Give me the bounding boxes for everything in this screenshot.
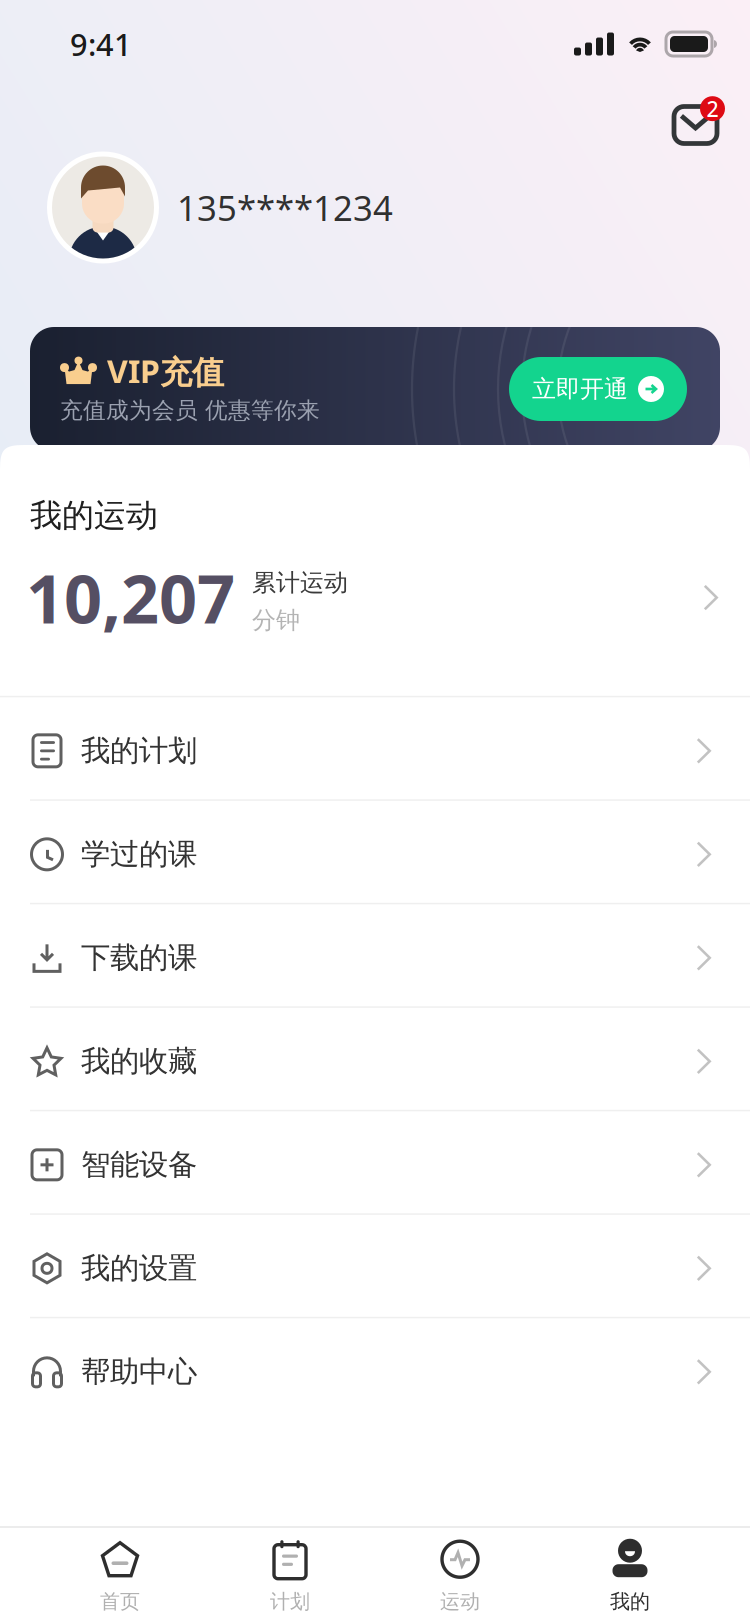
staticText: 运动 [440,1589,480,1614]
staticText: 充值成为会员 优惠等你来 [60,396,320,424]
button[interactable]: 运动 [375,1528,545,1624]
button[interactable]: 学过的课 [0,801,750,903]
staticText: 135****1234 [177,184,393,230]
staticText: 我的 [610,1589,650,1614]
staticText: 帮助中心 [81,1354,197,1390]
button[interactable]: Messages [671,93,728,144]
staticText: 计划 [270,1589,310,1614]
staticText: 我的运动 [30,496,158,535]
staticText: 10,207 [26,553,235,642]
staticText: 智能设备 [81,1147,197,1183]
button[interactable]: 下载的课 [0,904,750,1006]
button[interactable]: 10,207 [30,535,720,696]
staticText: 9:41 [70,24,132,64]
staticText: 学过的课 [81,836,197,872]
staticText: 下载的课 [81,940,197,976]
button[interactable]: 我的 [545,1528,715,1624]
button[interactable]: 智能设备 [0,1111,750,1213]
staticText: 我的计划 [81,733,197,769]
staticText: 累计运动 [252,568,348,598]
staticText: VIP充值 [107,350,224,392]
button[interactable]: 我的设置 [0,1215,750,1317]
button[interactable]: 计划 [205,1528,375,1624]
staticText: 我的设置 [81,1250,197,1286]
staticText: 分钟 [252,606,300,635]
button[interactable]: 我的计划 [0,697,750,799]
button[interactable]: 首页 [35,1528,205,1624]
staticText: 立即开通 [532,374,628,404]
button[interactable]: 我的收藏 [0,1008,750,1110]
staticText: 首页 [100,1589,140,1614]
button[interactable]: 帮助中心 [0,1318,750,1420]
button[interactable]: 立即开通 [509,357,687,421]
staticText: 我的收藏 [81,1043,197,1079]
staticText: 2 [706,94,718,123]
